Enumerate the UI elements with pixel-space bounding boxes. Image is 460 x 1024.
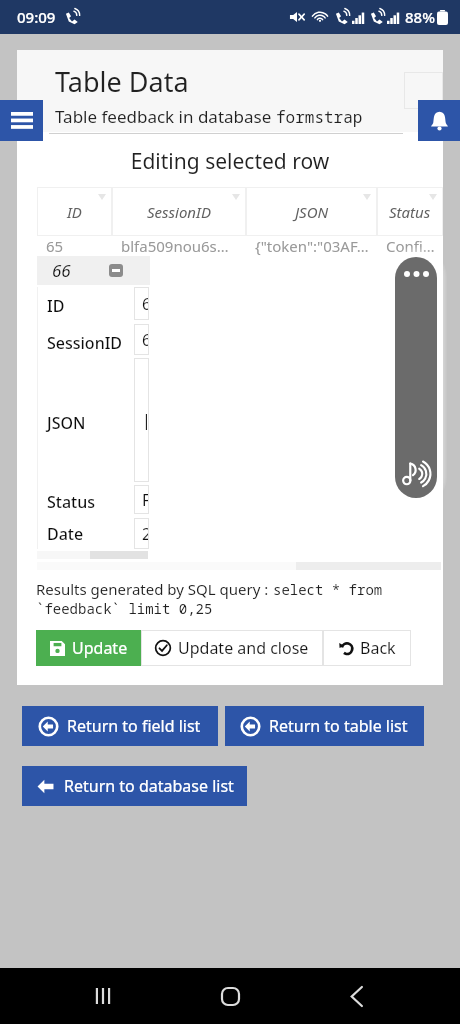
button[interactable]: Back	[323, 630, 411, 666]
staticText: SessionID	[147, 202, 211, 222]
staticText: F	[142, 489, 149, 511]
staticText: Update and close	[178, 637, 309, 659]
button[interactable]: |	[134, 358, 149, 482]
staticText: 65	[46, 236, 64, 256]
staticText: 88%	[405, 7, 435, 27]
button[interactable]: Notifications	[418, 100, 460, 141]
staticText: ID	[47, 295, 65, 317]
staticText: SessionID	[47, 332, 123, 354]
button[interactable]: F	[134, 485, 149, 514]
staticText: Date	[47, 523, 84, 545]
staticText: JSON	[47, 412, 86, 434]
staticText: 6	[142, 293, 149, 315]
staticText: ID	[67, 202, 82, 222]
button[interactable]: ID	[37, 187, 112, 236]
staticText: Table feedback in database	[55, 105, 276, 128]
button[interactable]: Return to database list	[22, 766, 247, 806]
staticText: Return to table list	[269, 715, 408, 737]
button[interactable]: 6	[134, 324, 149, 355]
staticText: Table Data	[55, 63, 189, 100]
staticText: `feedback` limit 0,25	[36, 599, 213, 618]
button[interactable]: SessionID	[112, 187, 246, 236]
button[interactable]: 6	[134, 287, 149, 320]
button[interactable]: Update	[36, 630, 141, 666]
button[interactable]: JSON	[246, 187, 377, 236]
staticText: Return to database list	[64, 775, 234, 797]
staticText: select * from	[273, 580, 383, 599]
staticText: {"token":"03AF…	[255, 236, 369, 256]
staticText: Return to field list	[67, 715, 201, 737]
button[interactable]: Recents	[79, 972, 127, 1020]
button[interactable]: Update and close	[141, 630, 323, 666]
staticText: 2	[142, 523, 149, 545]
staticText: 6	[142, 329, 149, 351]
staticText: Back	[360, 637, 396, 659]
button[interactable]: Header action	[404, 72, 443, 109]
button[interactable]: Home	[206, 972, 254, 1020]
staticText: Update	[72, 637, 128, 659]
button[interactable]: Back	[333, 972, 381, 1020]
button[interactable]: Collapse row	[109, 264, 123, 277]
staticText: 09:09	[17, 7, 56, 27]
staticText: Editing selected row	[17, 147, 443, 176]
staticText: |	[142, 409, 149, 431]
staticText: Confi…	[386, 236, 435, 256]
button[interactable]: Volume	[395, 257, 437, 498]
staticText: formstrap	[276, 106, 363, 128]
staticText: Status	[47, 491, 96, 513]
button[interactable]: Return to field list	[22, 706, 218, 746]
button[interactable]: 2	[134, 518, 149, 549]
staticText: 66	[52, 259, 71, 282]
staticText: blfa509nou6s…	[121, 236, 229, 256]
staticText: Status	[389, 202, 431, 222]
button[interactable]: Status	[377, 187, 443, 236]
staticText: Results generated by SQL query :	[36, 579, 273, 599]
button[interactable]: Open menu	[0, 100, 43, 141]
button[interactable]: Return to table list	[225, 706, 424, 746]
staticText: JSON	[295, 202, 329, 222]
